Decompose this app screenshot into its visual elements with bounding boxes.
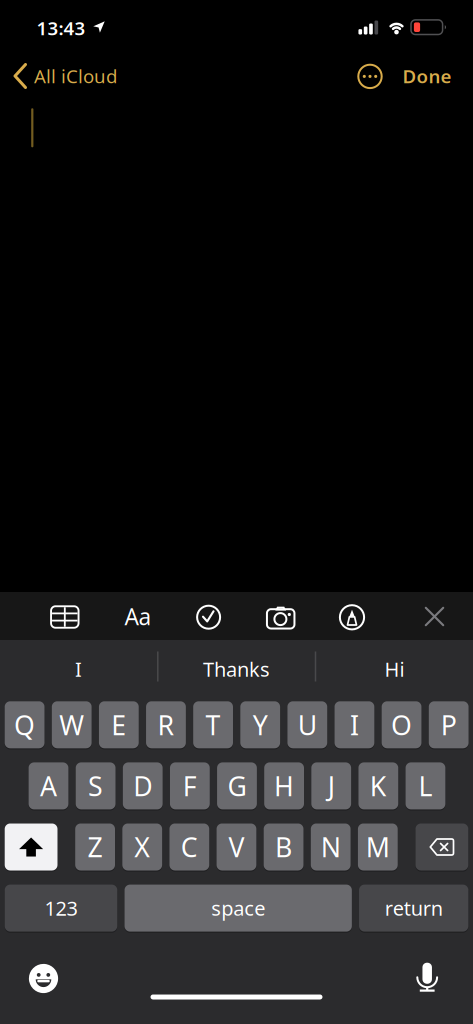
button[interactable]: A	[29, 762, 68, 809]
staticText: D	[133, 768, 152, 804]
button[interactable]: E	[99, 701, 139, 748]
button[interactable]: F	[170, 762, 210, 809]
button[interactable]: Emoji	[28, 963, 58, 993]
staticText: M	[366, 829, 390, 865]
button[interactable]: B	[264, 823, 303, 870]
staticText: P	[441, 707, 457, 742]
button[interactable]: G	[217, 762, 257, 809]
staticText: G	[227, 768, 246, 804]
staticText: A	[40, 768, 57, 804]
button[interactable]: All iCloud	[13, 54, 163, 98]
staticText: N	[321, 829, 341, 865]
staticText: I	[350, 707, 359, 742]
button[interactable]: W	[52, 701, 92, 748]
staticText: Done	[402, 64, 451, 88]
button[interactable]: R	[146, 701, 186, 748]
button[interactable]: V	[217, 823, 256, 870]
staticText: 123	[44, 895, 77, 921]
staticText: R	[157, 707, 174, 742]
button[interactable]: Insert table	[50, 605, 80, 629]
button[interactable]: I	[3, 646, 153, 692]
staticText: W	[59, 707, 84, 742]
staticText: Y	[253, 707, 268, 742]
button[interactable]: return	[359, 885, 468, 932]
button[interactable]: Markup	[339, 604, 365, 630]
button[interactable]: Thanks	[161, 646, 311, 692]
staticText: L	[418, 768, 432, 804]
button[interactable]: Z	[75, 823, 115, 870]
button[interactable]: Camera	[268, 605, 294, 629]
staticText: space	[211, 895, 265, 921]
button[interactable]: I	[334, 701, 374, 748]
button[interactable]: Dictation	[416, 962, 438, 994]
staticText: V	[228, 829, 244, 865]
button[interactable]: D	[123, 762, 163, 809]
button[interactable]: Delete	[415, 823, 468, 870]
button[interactable]: More	[356, 62, 384, 90]
button[interactable]: O	[382, 701, 421, 748]
staticText: Thanks	[203, 656, 270, 682]
staticText: O	[391, 707, 412, 742]
button[interactable]: Done	[371, 54, 451, 98]
button[interactable]: J	[311, 762, 351, 809]
button[interactable]: Shift	[5, 823, 57, 870]
staticText: S	[88, 768, 103, 804]
button[interactable]: Format	[124, 601, 151, 631]
button[interactable]: Y	[240, 701, 280, 748]
staticText: B	[275, 829, 292, 865]
button[interactable]: S	[76, 762, 115, 809]
button[interactable]: M	[358, 823, 398, 870]
button[interactable]: Hi	[319, 646, 469, 692]
button[interactable]: 123	[5, 885, 117, 932]
staticText: X	[134, 829, 150, 865]
button[interactable]: C	[169, 823, 209, 870]
button[interactable]: K	[358, 762, 398, 809]
staticText: return	[385, 895, 443, 921]
staticText: Aa	[124, 601, 151, 631]
staticText: I	[75, 656, 82, 682]
button[interactable]: space	[124, 885, 352, 932]
button[interactable]: L	[406, 762, 445, 809]
staticText: C	[181, 829, 198, 865]
staticText: Z	[88, 829, 103, 865]
staticText: K	[370, 768, 387, 804]
button[interactable]: T	[193, 701, 233, 748]
staticText: Hi	[384, 656, 404, 682]
staticText: H	[274, 768, 294, 804]
button[interactable]: Dismiss keyboard toolbar	[425, 607, 444, 626]
staticText: All iCloud	[34, 64, 117, 88]
staticText: T	[206, 707, 221, 742]
staticText: F	[183, 768, 197, 804]
staticText: U	[298, 707, 317, 742]
staticText: Q	[14, 707, 35, 742]
button[interactable]: U	[287, 701, 327, 748]
button[interactable]: Q	[5, 701, 44, 748]
staticText: E	[111, 707, 126, 742]
button[interactable]: X	[122, 823, 162, 870]
button[interactable]: N	[311, 823, 351, 870]
button[interactable]: Checklist	[197, 605, 221, 629]
button[interactable]: H	[264, 762, 304, 809]
staticText: 13:43	[36, 16, 85, 40]
staticText: J	[328, 768, 335, 804]
button[interactable]: P	[429, 701, 469, 748]
